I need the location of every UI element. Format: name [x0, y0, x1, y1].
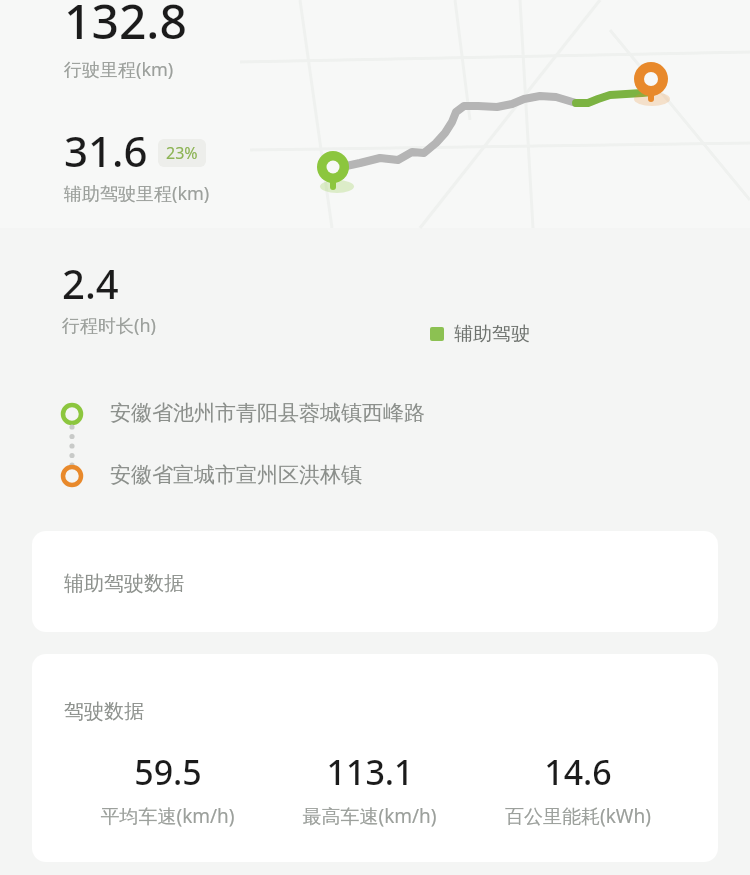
staticText: 31.6: [64, 122, 148, 179]
staticText: 132.8: [64, 0, 187, 53]
staticText: 113.1: [326, 749, 414, 795]
staticText: 平均车速(km/h): [100, 803, 235, 829]
staticText: 2.4: [62, 256, 119, 310]
button[interactable]: Trip map: [0, 0, 750, 228]
staticText: 辅助驾驶: [454, 322, 530, 346]
staticText: 安徽省宣城市宣州区洪林镇: [110, 462, 362, 488]
button[interactable]: 辅助驾驶数据: [32, 531, 718, 632]
button[interactable]: 辅助驾驶: [430, 322, 530, 346]
staticText: 百公里能耗(kWh): [505, 803, 651, 829]
staticText: 安徽省池州市青阳县蓉城镇西峰路: [110, 400, 425, 426]
staticText: 14.6: [544, 749, 612, 795]
staticText: 驾驶数据: [64, 699, 144, 724]
staticText: 行驶里程(km): [64, 57, 174, 82]
staticText: 59.5: [134, 749, 202, 795]
staticText: 23%: [166, 142, 198, 164]
staticText: 辅助驾驶数据: [64, 571, 184, 596]
staticText: 辅助驾驶里程(km): [64, 181, 210, 206]
staticText: 最高车速(km/h): [302, 803, 437, 829]
button[interactable]: 驾驶数据: [32, 654, 718, 862]
staticText: 行程时长(h): [62, 313, 156, 338]
